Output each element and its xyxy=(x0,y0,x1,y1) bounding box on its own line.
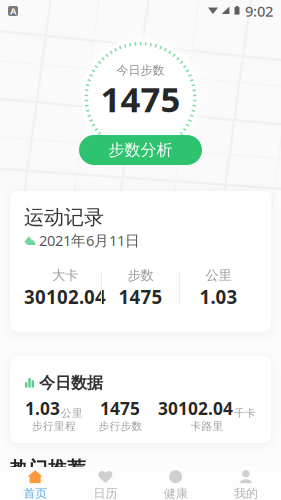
button[interactable]: 步数分析 xyxy=(79,135,202,165)
staticText: 1475 xyxy=(100,397,140,420)
staticText: 公里 xyxy=(205,267,231,283)
staticText: 公里 xyxy=(61,407,83,420)
button[interactable]: 日历 xyxy=(70,467,140,500)
staticText: 1475 xyxy=(118,284,162,309)
staticText: 首页 xyxy=(23,486,47,500)
staticText: 日历 xyxy=(93,486,117,500)
staticText: 卡路里 xyxy=(190,420,223,433)
staticText: 1475 xyxy=(100,76,180,122)
staticText: 9:02 xyxy=(245,1,273,21)
staticText: 千卡 xyxy=(234,407,256,420)
staticText: 大卡 xyxy=(52,267,78,283)
staticText: 运动记录 xyxy=(24,205,104,230)
staticText: 我的 xyxy=(234,486,258,500)
button[interactable]: 健康 xyxy=(140,467,211,500)
staticText: 1.03 xyxy=(25,397,60,420)
staticText: 30102.04 xyxy=(158,397,233,420)
staticText: 热门推荐 xyxy=(10,457,86,480)
staticText: A xyxy=(10,5,16,17)
staticText: 步数分析 xyxy=(108,140,172,160)
staticText: 今日数据 xyxy=(39,373,103,393)
staticText: 步行步数 xyxy=(98,420,142,433)
staticText: 健康 xyxy=(164,486,188,500)
staticText: 步数 xyxy=(127,267,153,283)
button[interactable]: 我的 xyxy=(211,467,281,500)
staticText: 30102.04 xyxy=(24,284,106,309)
staticText: 步行里程 xyxy=(32,420,76,433)
staticText: 今日步数 xyxy=(116,63,164,78)
staticText: 1.03 xyxy=(199,284,237,309)
button[interactable]: 首页 xyxy=(0,467,70,500)
staticText: 2021年6月11日 xyxy=(39,231,140,250)
